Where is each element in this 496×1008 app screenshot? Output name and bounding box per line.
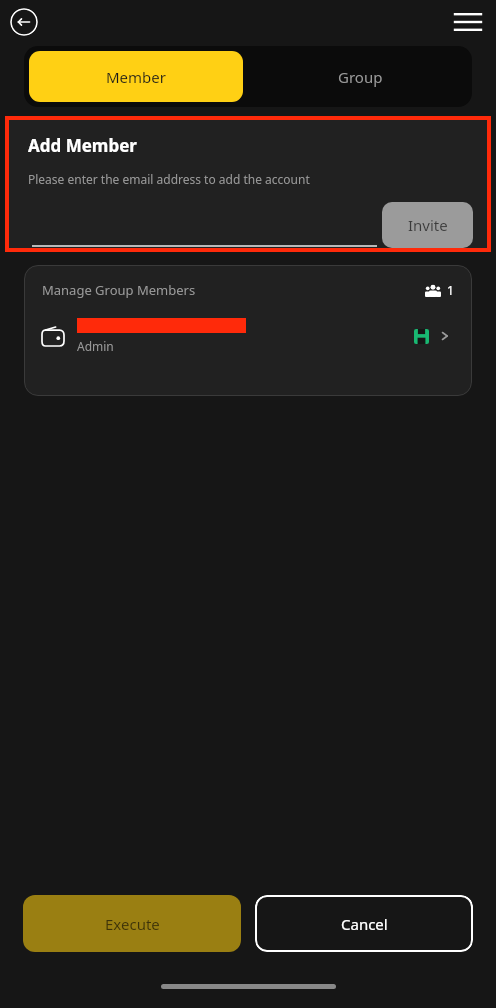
button[interactable]: Invite xyxy=(382,202,473,248)
staticText: Member xyxy=(106,67,166,87)
staticText: 1 xyxy=(447,282,454,298)
button[interactable]: Manage Group Members xyxy=(24,265,472,396)
button[interactable]: Menu xyxy=(452,6,484,38)
button[interactable]: Save xyxy=(408,323,434,349)
staticText: Add Member xyxy=(28,134,137,157)
button[interactable]: Add Member xyxy=(9,120,487,248)
button[interactable]: Member xyxy=(29,51,243,102)
staticText: Please enter the email address to add th… xyxy=(28,171,310,187)
staticText: Cancel xyxy=(341,914,388,934)
staticText: Admin xyxy=(77,338,114,354)
staticText: Manage Group Members xyxy=(42,281,196,299)
button[interactable]: Execute xyxy=(23,895,241,952)
button[interactable]: Back xyxy=(10,8,38,36)
staticText: Invite xyxy=(408,215,448,235)
staticText: Execute xyxy=(105,914,160,934)
staticText: Group xyxy=(338,67,383,87)
button[interactable]: Open member details xyxy=(436,327,454,345)
button[interactable]: Group xyxy=(253,51,467,102)
button[interactable]: Cancel xyxy=(255,895,473,952)
